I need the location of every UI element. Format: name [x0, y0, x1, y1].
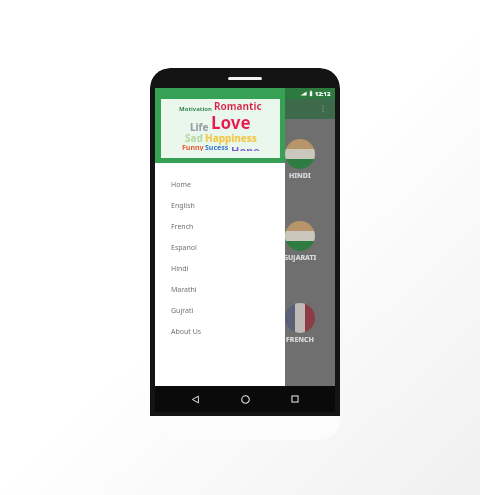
staticText: Sad: [185, 131, 203, 145]
staticText: Funny: [182, 143, 204, 151]
button[interactable]: HINDI: [269, 139, 331, 181]
button[interactable]: French: [155, 216, 285, 237]
button[interactable]: More options: [316, 102, 330, 116]
button[interactable]: GUJARATI: [269, 221, 331, 263]
staticText: HINDI: [289, 171, 311, 181]
staticText: Romantic: [214, 99, 262, 113]
button[interactable]: Gujrati: [155, 300, 285, 321]
button[interactable]: Marathi: [155, 279, 285, 300]
button[interactable]: Espanol: [155, 237, 285, 258]
staticText: FRENCH: [286, 335, 314, 345]
staticText: Sucess: [205, 143, 229, 151]
staticText: Love: [211, 111, 251, 134]
staticText: Home: [171, 180, 191, 190]
staticText: Life: [190, 120, 209, 134]
staticText: GUJARATI: [283, 253, 317, 263]
button[interactable]: Recent apps: [285, 389, 305, 409]
staticText: 12:12: [315, 90, 331, 98]
staticText: French: [171, 222, 194, 232]
button[interactable]: English: [155, 195, 285, 216]
button[interactable]: About Us: [155, 321, 285, 342]
staticText: Hindi: [171, 264, 189, 274]
staticText: About Us: [171, 327, 202, 337]
staticText: Hope: [231, 143, 260, 151]
staticText: Marathi: [171, 285, 197, 295]
staticText: English: [171, 201, 195, 211]
button[interactable]: Back: [185, 389, 205, 409]
button[interactable]: FRENCH: [269, 303, 331, 345]
staticText: Espanol: [171, 243, 197, 253]
button[interactable]: Home: [235, 389, 255, 409]
button[interactable]: Home: [155, 174, 285, 195]
staticText: Motivation: [179, 105, 212, 113]
staticText: Happiness: [205, 131, 257, 145]
button[interactable]: Hindi: [155, 258, 285, 279]
staticText: Gujrati: [171, 306, 194, 316]
